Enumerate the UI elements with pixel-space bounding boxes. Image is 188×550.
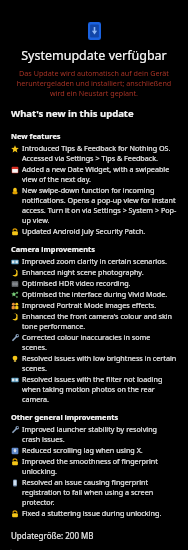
staticText: Systemupdate verfügbar: [11, 47, 177, 64]
staticText: Reduced scrolling lag when using X.: [22, 445, 143, 455]
staticText: New features: [11, 131, 61, 141]
staticText: Updated Android July Security Patch.: [22, 226, 146, 236]
staticText: Enhanced the front camera's colour and s…: [22, 311, 177, 331]
staticText: Resolved issues with the filter not load…: [22, 374, 177, 404]
staticText: Updategröße: 200 MB: [11, 530, 94, 541]
staticText: Resolved an issue causing fingerprint re…: [22, 477, 177, 507]
staticText: Improved zoom clarity in certain scenari…: [22, 256, 167, 266]
staticText: Resolved issues with low brightness in c…: [22, 353, 177, 373]
staticText: Fixed a stuttering issue during unlockin…: [22, 508, 162, 518]
staticText: Das Update wird automatisch auf dein Ger…: [11, 68, 177, 98]
staticText: Improved Portrait Mode images effects.: [22, 300, 157, 310]
staticText: Optimised the interface during Vivid Mod…: [22, 289, 168, 299]
staticText: What's new in this update: [11, 107, 134, 120]
staticText: New swipe-down function for incoming not…: [22, 185, 177, 225]
other: System update: [88, 22, 101, 40]
staticText: Other general improvements: [11, 412, 119, 422]
staticText: Improved the smoothness of fingerprint u…: [22, 456, 177, 476]
staticText: Corrected colour inaccuracies in some sc…: [22, 332, 177, 352]
staticText: Improved launcher stability by resolving…: [22, 424, 177, 444]
staticText: Introduced Tips & Feedback for Nothing O…: [22, 143, 177, 163]
staticText: Camera improvements: [11, 244, 95, 254]
staticText: Added a new Date Widget, with a swipeabl…: [22, 164, 177, 184]
staticText: Optimised HDR video recording.: [22, 278, 131, 288]
staticText: Enhanced night scene photography.: [22, 267, 144, 277]
